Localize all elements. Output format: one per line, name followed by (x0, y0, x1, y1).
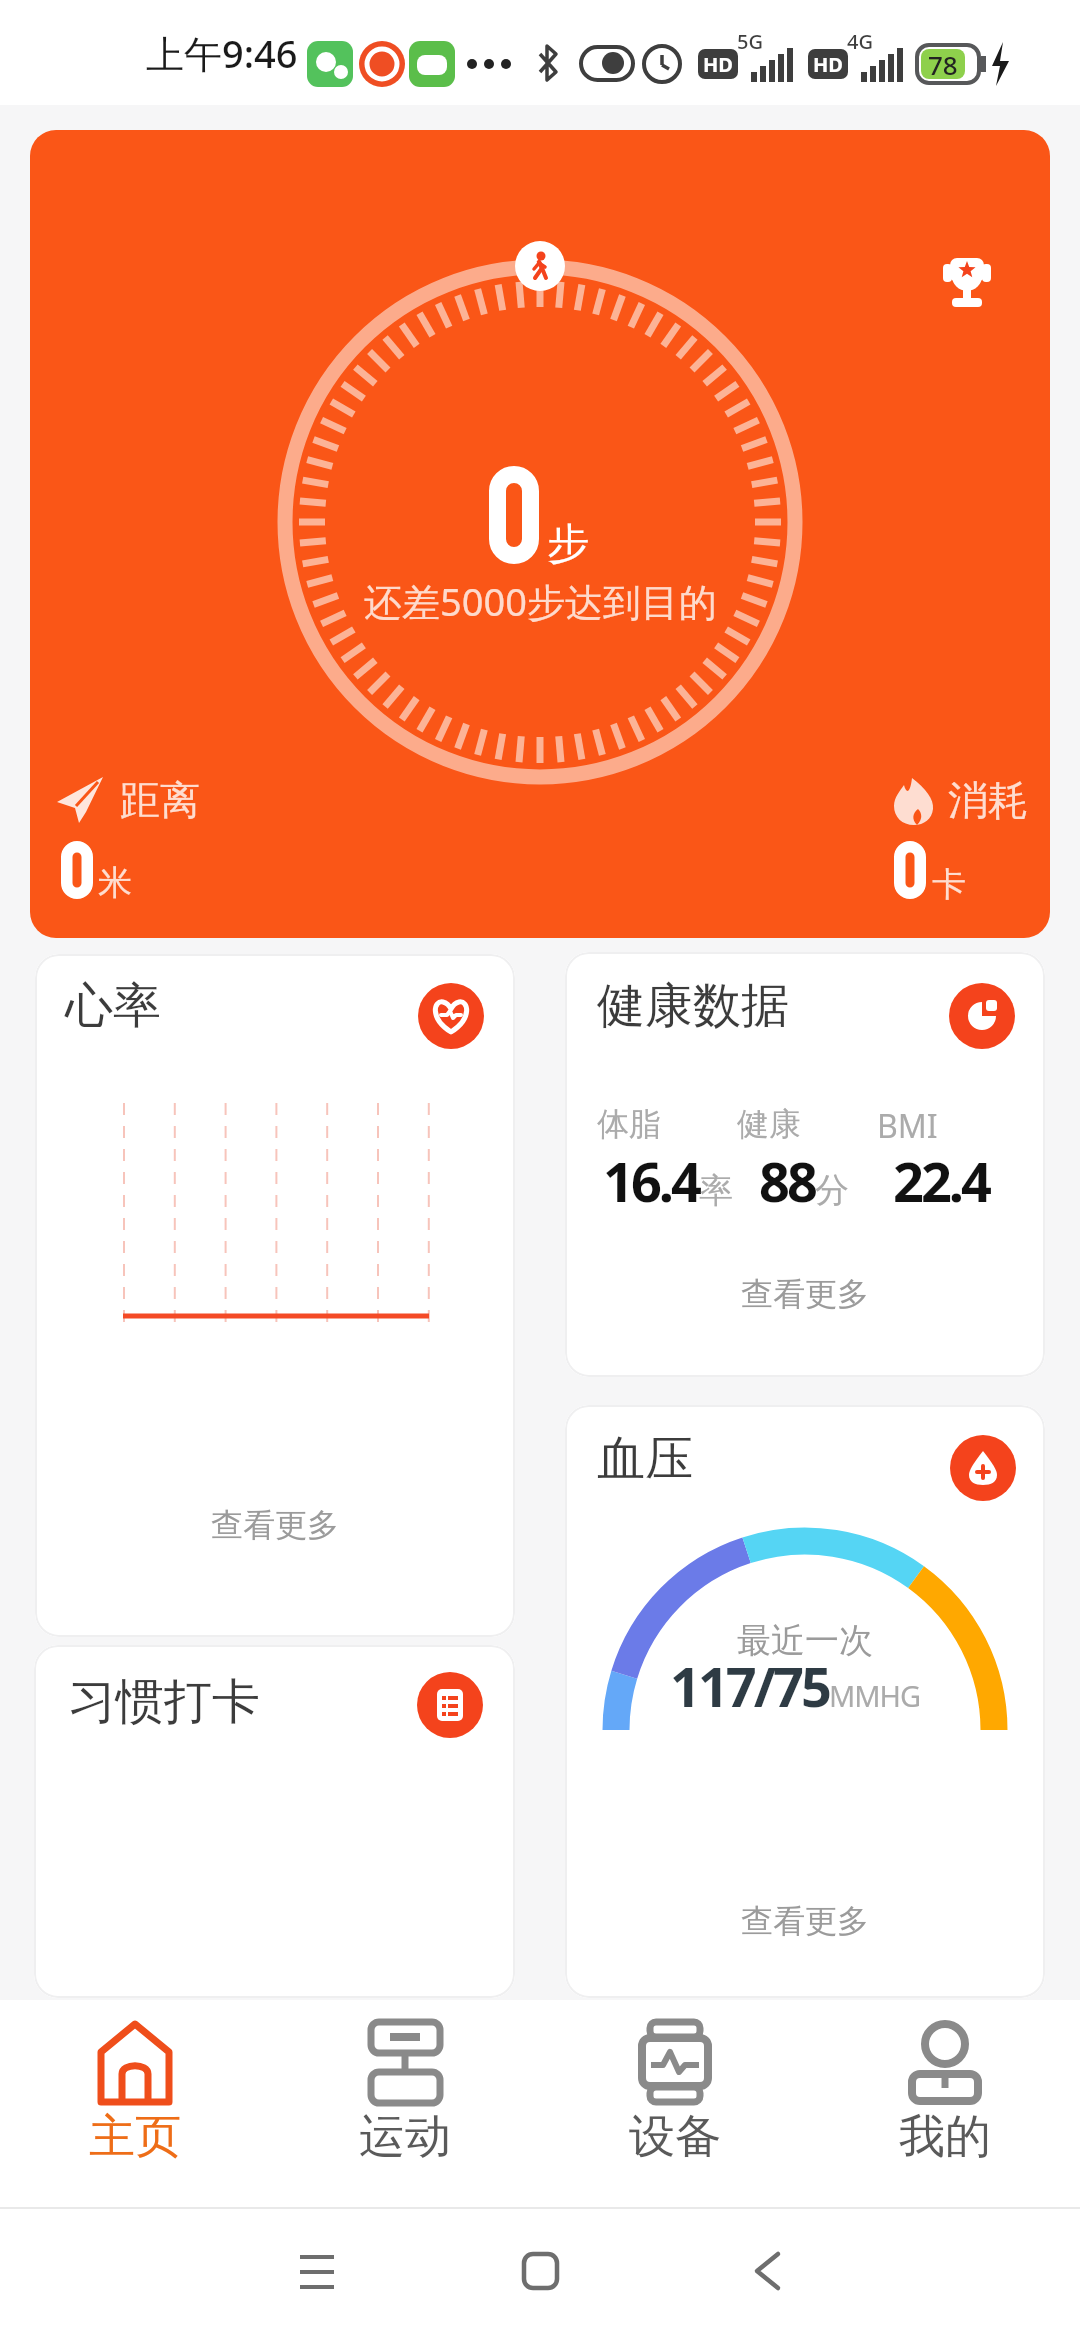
staticText: 还差5000步达到目的 (364, 575, 717, 627)
staticText: 16.4 (603, 1144, 699, 1218)
staticText: 88 (759, 1144, 815, 1218)
staticText: HD (703, 51, 733, 78)
button[interactable] (360, 2207, 720, 2340)
staticText: 体脂 (597, 1104, 661, 1144)
button[interactable]: 血压 (565, 1405, 1045, 1998)
staticText: 健康 (737, 1104, 801, 1144)
staticText: 查看更多 (741, 1274, 869, 1314)
button[interactable] (720, 2207, 1080, 2340)
staticText: BMI (877, 1104, 938, 1148)
button[interactable]: 设备 (540, 2000, 810, 2207)
staticText: 健康数据 (597, 976, 789, 1036)
staticText: 5G (737, 28, 763, 55)
button[interactable]: 习惯打卡 (34, 1645, 515, 1998)
staticText: 米 (98, 861, 132, 904)
staticText: 最近一次 (737, 1619, 873, 1662)
staticText: 我的 (899, 2108, 991, 2166)
staticText: 消耗 (948, 775, 1028, 825)
staticText: 117/75 (670, 1649, 829, 1723)
staticText: 步 (547, 518, 589, 571)
button[interactable]: 主页 (0, 2000, 270, 2207)
button[interactable]: 步 (30, 130, 1050, 938)
staticText: 4G (847, 28, 873, 55)
staticText: 分 (815, 1169, 849, 1212)
button[interactable]: 健康数据 (565, 952, 1045, 1377)
staticText: 卡 (932, 863, 966, 906)
button[interactable]: 心率 (35, 954, 515, 1637)
staticText: 习惯打卡 (68, 1672, 260, 1732)
staticText: 查看更多 (211, 1505, 339, 1545)
staticText: 血压 (597, 1429, 693, 1489)
staticText: 查看更多 (741, 1901, 869, 1941)
button[interactable] (0, 2207, 360, 2340)
staticText: 78 (928, 47, 958, 82)
staticText: 22.4 (893, 1144, 989, 1218)
staticText: 率 (699, 1169, 733, 1212)
staticText: 距离 (120, 775, 200, 825)
staticText: HD (813, 51, 843, 78)
staticText: 主页 (89, 2108, 181, 2166)
staticText: 心率 (65, 976, 161, 1036)
staticText: 设备 (629, 2108, 721, 2166)
staticText: MMHG (829, 1676, 921, 1715)
button[interactable]: 我的 (810, 2000, 1080, 2207)
button[interactable]: 运动 (270, 2000, 540, 2207)
staticText: 运动 (359, 2108, 451, 2166)
staticText: 上午9:46 (146, 27, 298, 79)
